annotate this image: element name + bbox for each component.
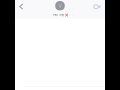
button[interactable]: FaceTime video call: [92, 1, 105, 12]
button[interactable]: Back: [15, 1, 26, 12]
staticText: V: [58, 2, 61, 9]
staticText: Trace Bay ❌: [52, 13, 67, 16]
